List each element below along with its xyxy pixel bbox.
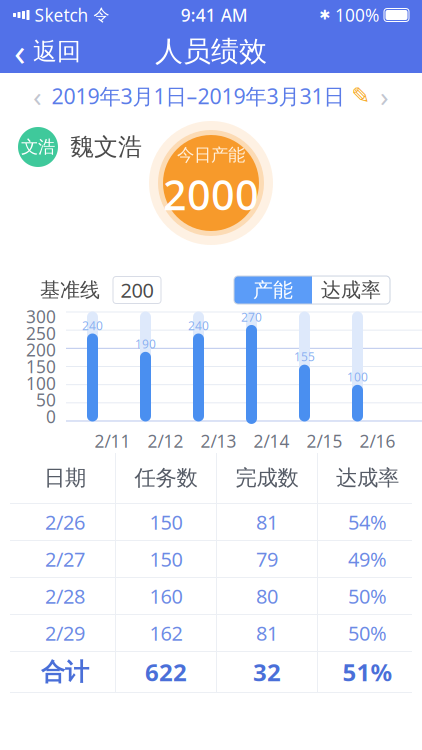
staticText: 2/16: [359, 429, 395, 452]
staticText: 2/26: [45, 509, 85, 535]
staticText: 155: [294, 349, 315, 365]
staticText: 100: [26, 372, 56, 395]
staticText: Sketch: [34, 3, 88, 26]
staticText: 魏文浩: [70, 132, 142, 162]
staticText: 2/27: [45, 546, 85, 572]
staticText: 162: [149, 620, 182, 646]
staticText: 50%: [348, 583, 387, 609]
staticText: 160: [149, 583, 182, 609]
staticText: 2000: [163, 167, 259, 222]
staticText: 50%: [348, 620, 387, 646]
staticText: 200: [120, 277, 153, 303]
staticText: 日期: [44, 465, 86, 491]
staticText: 2/12: [147, 429, 183, 452]
staticText: 基准线: [40, 278, 100, 302]
staticText: 49%: [348, 546, 387, 572]
staticText: 任务数: [134, 465, 197, 491]
staticText: 50: [36, 388, 56, 411]
staticText: ✎: [351, 83, 370, 109]
staticText: 2/13: [200, 429, 236, 452]
staticText: ✱: [319, 7, 330, 22]
staticText: 81: [256, 509, 278, 535]
staticText: 150: [149, 546, 182, 572]
staticText: 产能: [253, 278, 293, 302]
staticText: 250: [26, 322, 56, 345]
staticText: 2/14: [253, 429, 289, 452]
staticText: 2/15: [306, 429, 342, 452]
staticText: 32: [253, 656, 281, 688]
button[interactable]: 达成率: [312, 276, 390, 304]
button[interactable]: 200: [113, 276, 161, 303]
staticText: 150: [26, 355, 56, 378]
button[interactable]: ‹: [0, 30, 95, 73]
button[interactable]: 上一区间: [23, 78, 51, 114]
staticText: 54%: [348, 509, 387, 535]
button[interactable]: 下一区间: [370, 78, 398, 114]
staticText: 79: [256, 546, 278, 572]
staticText: 240: [188, 318, 209, 333]
staticText: 0: [46, 405, 56, 428]
staticText: 达成率: [321, 278, 381, 302]
staticText: ‹: [33, 77, 42, 115]
staticText: 令: [93, 5, 109, 25]
staticText: 150: [149, 509, 182, 535]
staticText: 返回: [33, 37, 81, 66]
staticText: 300: [26, 305, 56, 328]
staticText: 190: [135, 336, 156, 352]
staticText: 9:41 AM: [181, 3, 248, 26]
staticText: 200: [26, 338, 56, 361]
staticText: 2/29: [45, 620, 85, 646]
staticText: 270: [241, 309, 262, 325]
staticText: 2/11: [94, 429, 130, 452]
staticText: 622: [145, 656, 187, 688]
staticText: 100: [347, 369, 368, 385]
staticText: 文浩: [21, 136, 55, 158]
button[interactable]: 产能: [234, 276, 312, 304]
button[interactable]: 2019年3月1日–2019年3月31日: [51, 78, 370, 114]
staticText: 2019年3月1日–2019年3月31日: [51, 82, 344, 110]
staticText: 今日产能: [177, 144, 245, 166]
staticText: 81: [256, 620, 278, 646]
staticText: ›: [380, 77, 389, 115]
staticText: ‹: [14, 27, 26, 76]
staticText: 80: [256, 583, 278, 609]
staticText: 人员绩效: [155, 34, 267, 69]
staticText: 2/28: [45, 583, 85, 609]
staticText: 达成率: [336, 465, 399, 491]
staticText: 100%: [335, 3, 379, 26]
staticText: 完成数: [235, 465, 298, 491]
staticText: 51%: [342, 656, 392, 688]
staticText: 240: [82, 318, 103, 333]
staticText: 合计: [41, 657, 89, 687]
